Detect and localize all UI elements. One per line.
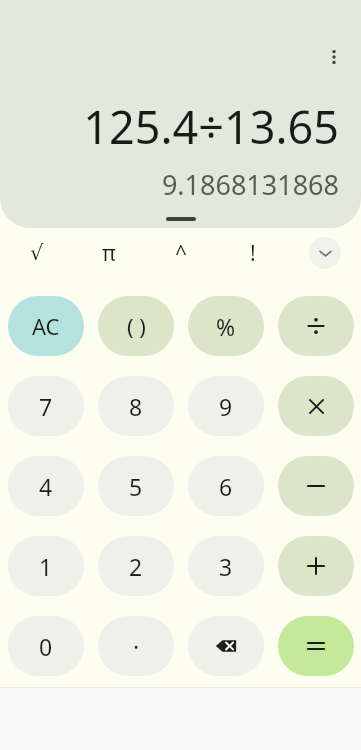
button[interactable]: 2	[98, 536, 174, 596]
button[interactable]: √	[0, 228, 73, 278]
button[interactable]: 3	[188, 536, 264, 596]
button[interactable]: AC	[8, 296, 84, 356]
staticText: 0	[39, 631, 53, 662]
staticText: 9.1868131868	[20, 166, 339, 203]
button[interactable]: Minus	[278, 456, 354, 516]
staticText: ·	[133, 631, 140, 662]
button[interactable]: !	[217, 228, 289, 278]
staticText: ^	[175, 239, 188, 268]
staticText: !	[250, 239, 256, 268]
button[interactable]: Expand functions	[309, 237, 341, 269]
staticText: 9	[219, 391, 233, 422]
button[interactable]: 8	[98, 376, 174, 436]
staticText: 1	[39, 551, 53, 582]
button[interactable]: 1	[8, 536, 84, 596]
button[interactable]: 0	[8, 616, 84, 676]
button[interactable]: 7	[8, 376, 84, 436]
staticText: 4	[39, 471, 53, 502]
button[interactable]: ·	[98, 616, 174, 676]
button[interactable]: %	[188, 296, 264, 356]
button[interactable]: Equals	[278, 616, 354, 676]
staticText: 5	[129, 471, 143, 502]
staticText: π	[102, 239, 116, 268]
button[interactable]: More options	[313, 36, 355, 78]
staticText: AC	[32, 311, 60, 341]
button[interactable]: ^	[145, 228, 217, 278]
staticText: √	[30, 241, 44, 265]
button[interactable]: Divide	[278, 296, 354, 356]
staticText: 6	[219, 471, 233, 502]
staticText: 125.4÷13.65	[20, 96, 339, 157]
staticText: 3	[219, 551, 233, 582]
button[interactable]: 9	[188, 376, 264, 436]
button[interactable]: 4	[8, 456, 84, 516]
staticText: 7	[39, 391, 53, 422]
button[interactable]: Multiply	[278, 376, 354, 436]
button[interactable]: Delete	[188, 616, 264, 676]
staticText: %	[216, 311, 236, 342]
button[interactable]: 6	[188, 456, 264, 516]
button[interactable]: Plus	[278, 536, 354, 596]
staticText: ( )	[127, 311, 146, 341]
staticText: 2	[129, 551, 143, 582]
button[interactable]: ( )	[98, 296, 174, 356]
button[interactable]: π	[73, 228, 145, 278]
button[interactable]: 5	[98, 456, 174, 516]
staticText: 8	[129, 391, 143, 422]
